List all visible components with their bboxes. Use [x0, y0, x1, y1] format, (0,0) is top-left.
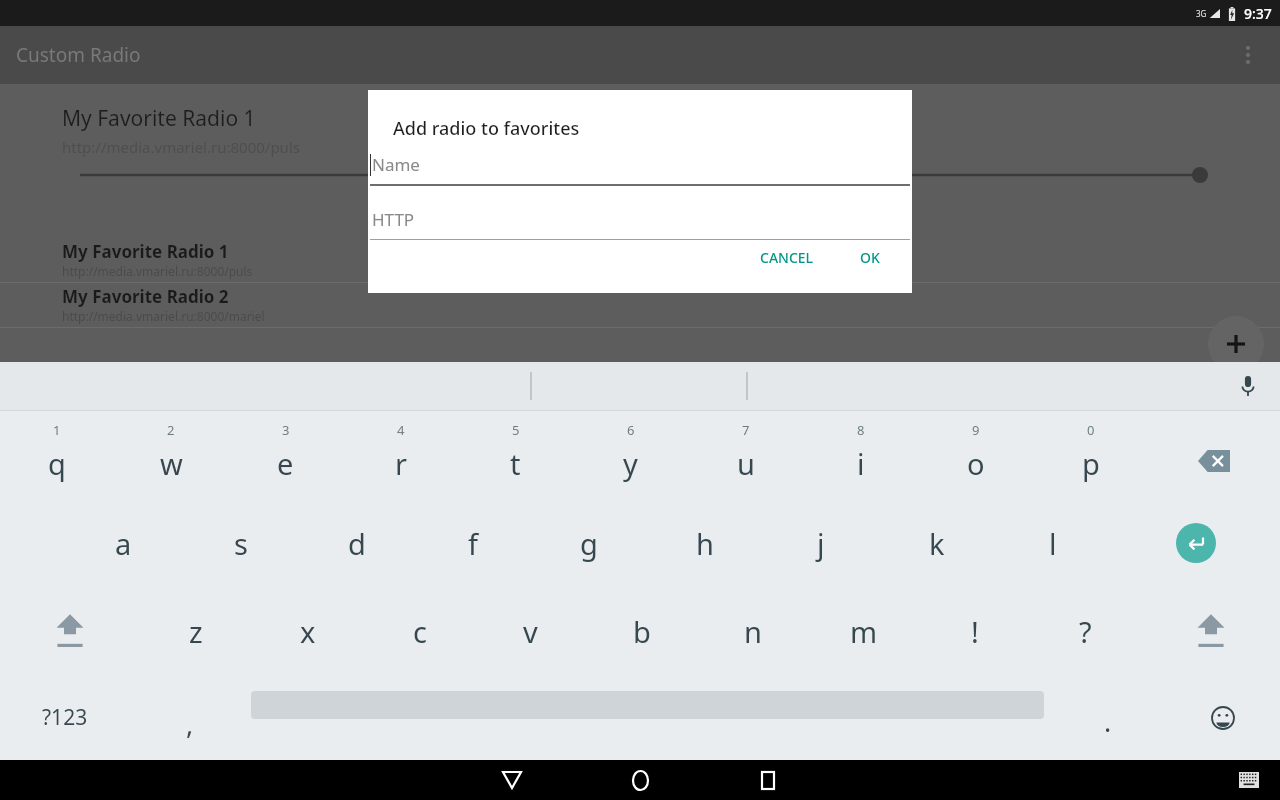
button[interactable]: v [475, 587, 586, 675]
button[interactable]: m [808, 587, 919, 675]
button[interactable]: My Favorite Radio 2 [0, 283, 1280, 327]
staticText: u [737, 444, 755, 483]
staticText: 7 [742, 421, 750, 439]
button[interactable]: More options [1228, 35, 1268, 75]
button[interactable]: Enter [1111, 499, 1280, 587]
staticText: x [300, 612, 316, 651]
button[interactable]: z [140, 587, 252, 675]
staticText: n [744, 612, 762, 651]
button[interactable]: b [586, 587, 697, 675]
staticText: z [189, 612, 203, 651]
staticText: My Favorite Radio 2 [62, 285, 229, 308]
staticText: 4 [397, 421, 405, 439]
staticText: Name [372, 153, 420, 176]
button[interactable]: 0 [1033, 411, 1148, 499]
button[interactable]: s [182, 499, 299, 587]
button[interactable]: h [647, 499, 763, 587]
button[interactable]: ! [919, 587, 1030, 675]
button[interactable]: k [879, 499, 995, 587]
staticText: e [277, 444, 294, 483]
staticText: 9 [972, 421, 980, 439]
staticText: w [160, 444, 183, 483]
button[interactable]: CANCEL [750, 240, 824, 275]
button[interactable]: g [531, 499, 647, 587]
button[interactable]: f [415, 499, 531, 587]
button[interactable]: 3 [228, 411, 343, 499]
staticText: d [348, 524, 366, 563]
button[interactable]: 2 [114, 411, 228, 499]
staticText: 1 [53, 421, 61, 439]
staticText: Add radio to favorites [393, 116, 580, 141]
button[interactable]: a [65, 499, 182, 587]
button[interactable]: 4 [343, 411, 458, 499]
staticText: y [623, 444, 638, 483]
button[interactable]: Shift [0, 587, 140, 675]
button[interactable]: Name [368, 153, 912, 186]
button[interactable]: HTTP [368, 208, 912, 240]
staticText: My Favorite Radio 1 [62, 104, 256, 133]
button[interactable]: Show keyboard [1232, 763, 1266, 797]
staticText: j [817, 524, 825, 563]
button[interactable]: ? [1030, 587, 1141, 675]
button[interactable]: Back [484, 760, 540, 800]
staticText: http://media.vmariel.ru:8000/puls [62, 263, 253, 279]
button[interactable]: 7 [688, 411, 803, 499]
staticText: h [696, 524, 714, 563]
staticText: 6 [627, 421, 635, 439]
staticText: 0 [1087, 421, 1095, 439]
staticText: p [1082, 444, 1100, 483]
staticText: k [929, 524, 945, 563]
staticText: v [523, 612, 538, 651]
staticText: , [186, 705, 194, 742]
staticText: ? [1079, 612, 1092, 651]
button[interactable]: 9 [918, 411, 1033, 499]
button[interactable]: x [252, 587, 364, 675]
staticText: 5 [512, 421, 520, 439]
staticText: 8 [857, 421, 865, 439]
button[interactable] [0, 165, 1280, 185]
button[interactable]: Custom Radio [0, 26, 1280, 84]
button[interactable]: Add [1208, 316, 1264, 372]
button[interactable]: . [1070, 675, 1146, 760]
button[interactable]: 5 [458, 411, 573, 499]
staticText: HTTP [372, 208, 415, 231]
staticText: t [510, 444, 521, 483]
staticText: ! [971, 612, 979, 651]
button[interactable]: 6 [573, 411, 688, 499]
staticText: m [850, 612, 878, 651]
staticText: http://media.vmariel.ru:8000/puls [62, 137, 300, 157]
button[interactable]: l [995, 499, 1111, 587]
button[interactable]: j [763, 499, 879, 587]
staticText: a [115, 524, 132, 563]
button[interactable]: , [150, 675, 230, 760]
staticText: o [967, 444, 985, 483]
button[interactable]: n [697, 587, 808, 675]
staticText: i [857, 444, 865, 483]
button[interactable]: 1 [0, 411, 114, 499]
button[interactable]: Home [612, 760, 668, 800]
staticText: 2 [167, 421, 175, 439]
staticText: http://media.vmariel.ru:8000/mariel [62, 308, 265, 324]
staticText: CANCEL [760, 248, 814, 267]
button[interactable]: d [299, 499, 415, 587]
button[interactable]: Emoji [1190, 675, 1256, 760]
staticText: c [413, 612, 427, 651]
button[interactable]: OK [850, 240, 890, 275]
staticText: g [580, 524, 598, 563]
staticText: l [1049, 524, 1057, 563]
staticText: Custom Radio [16, 42, 141, 68]
staticText: 3G [1196, 8, 1207, 19]
button[interactable]: Recents [740, 760, 796, 800]
button[interactable]: ?123 [20, 675, 110, 760]
button[interactable]: Shift [1141, 587, 1280, 675]
button[interactable]: My Favorite Radio 1 [0, 238, 1280, 282]
button[interactable]: Voice input [1230, 368, 1266, 404]
staticText: . [1104, 703, 1112, 740]
button[interactable]: Backspace [1148, 411, 1280, 499]
button[interactable]: 8 [803, 411, 918, 499]
staticText: q [48, 444, 66, 483]
button[interactable]: c [364, 587, 475, 675]
staticText: 3 [282, 421, 290, 439]
staticText: b [633, 612, 651, 651]
